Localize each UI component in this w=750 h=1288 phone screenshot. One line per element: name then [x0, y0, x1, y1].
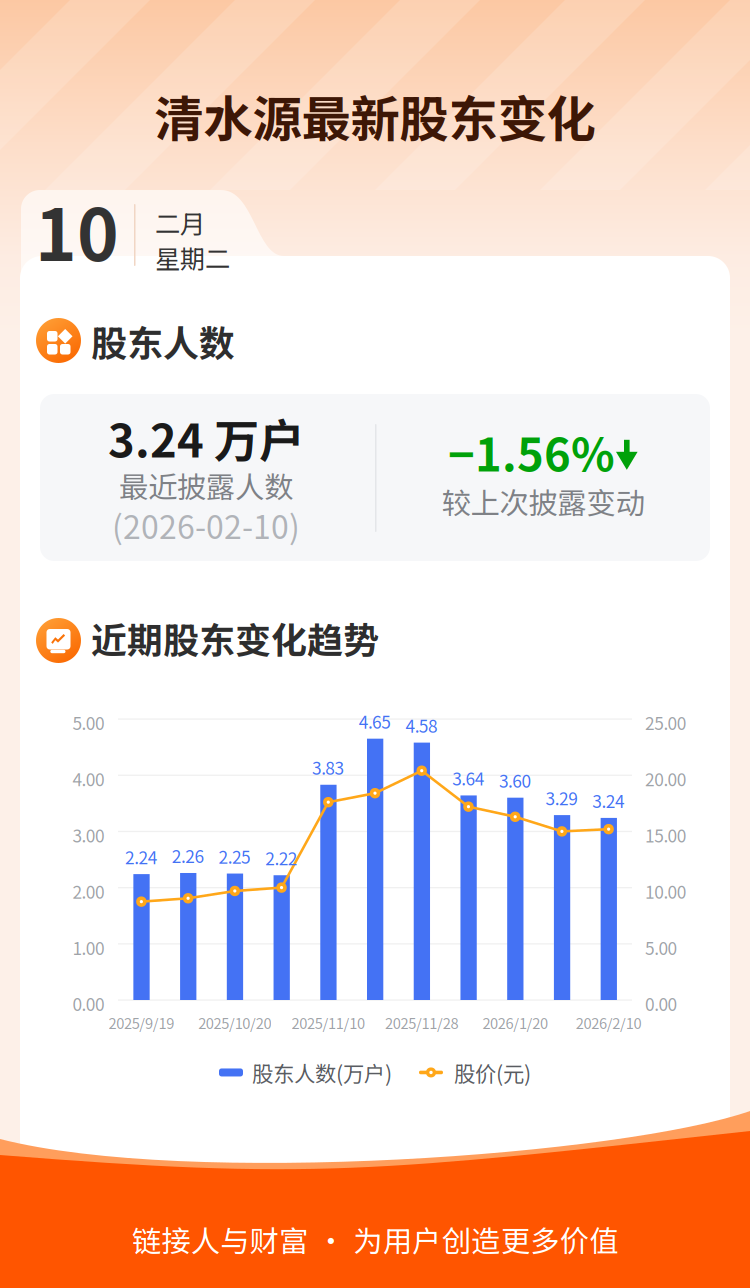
staticText: 4.58 — [405, 713, 438, 738]
staticText: 20.00 — [645, 766, 687, 791]
staticText: 3.83 — [312, 755, 345, 780]
button[interactable]: 10 — [20, 203, 280, 288]
staticText: 2025/11/10 — [292, 1012, 365, 1033]
staticText: 最近披露人数 — [119, 464, 293, 506]
staticText: 2025/10/20 — [198, 1012, 271, 1033]
staticText: 5.00 — [645, 935, 678, 960]
staticText: 3.24 万户 — [108, 405, 304, 471]
staticText: 2.00 — [72, 879, 105, 904]
staticText: 清水源最新股东变化 — [154, 80, 595, 151]
staticText: 0.00 — [72, 991, 105, 1016]
staticText: 4.00 — [72, 766, 105, 791]
staticText: 3.29 — [546, 785, 578, 810]
staticText: 股价(元) — [454, 1057, 531, 1088]
staticText: 25.00 — [645, 710, 687, 735]
staticText: 10 — [35, 179, 119, 281]
staticText: 近期股东变化趋势 — [91, 612, 379, 664]
staticText: 股东人数 — [91, 315, 235, 367]
staticText: 2025/11/28 — [385, 1012, 458, 1033]
staticText: 2026/1/20 — [482, 1012, 548, 1033]
staticText: 15.00 — [645, 822, 687, 847]
staticText: 2.22 — [265, 845, 298, 870]
staticText: 二月 — [155, 204, 205, 241]
staticText: 3.24 — [592, 788, 625, 813]
staticText: 10.00 — [645, 879, 687, 904]
staticText: 3.00 — [72, 822, 105, 847]
staticText: 2.25 — [218, 843, 251, 869]
staticText: (2026-02-10) — [112, 502, 300, 548]
staticText: −1.56% — [448, 419, 615, 485]
staticText: 星期二 — [155, 239, 230, 276]
staticText: 0.00 — [645, 991, 678, 1016]
staticText: 股东人数(万户) — [252, 1057, 392, 1088]
staticText: 2025/9/19 — [109, 1012, 174, 1033]
staticText: 2.24 — [125, 844, 158, 869]
staticText: 1.00 — [72, 935, 105, 960]
staticText: 2026/2/10 — [576, 1012, 641, 1033]
staticText: 2.26 — [172, 843, 204, 868]
staticText: 4.65 — [359, 709, 391, 734]
staticText: 3.60 — [499, 768, 531, 793]
staticText: 较上次披露变动 — [441, 480, 644, 522]
staticText: 链接人与财富 · 为用户创造更多价值 — [132, 1218, 618, 1260]
staticText: 5.00 — [72, 710, 105, 735]
staticText: 3.64 — [452, 765, 485, 790]
